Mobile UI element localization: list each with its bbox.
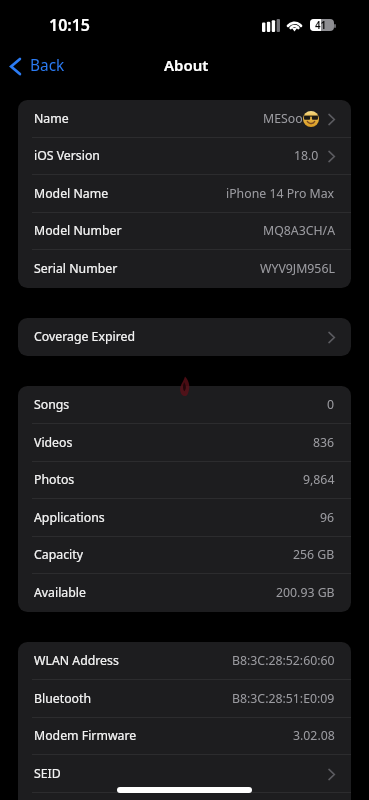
staticText: Serial Number xyxy=(34,260,118,277)
staticText: Modem Firmware xyxy=(34,727,137,744)
button[interactable]: Songs xyxy=(18,386,351,424)
button[interactable]: Model Name xyxy=(18,175,351,213)
button[interactable]: WLAN Address xyxy=(18,642,351,680)
button[interactable]: Name xyxy=(18,100,351,138)
staticText: WLAN Address xyxy=(34,652,119,669)
staticText: Capacity xyxy=(34,546,83,563)
staticText: 0 xyxy=(327,396,335,413)
button[interactable]: Serial Number xyxy=(18,250,351,288)
button[interactable]: Photos xyxy=(18,462,351,499)
button[interactable]: Capacity xyxy=(18,537,351,574)
button[interactable]: Model Number xyxy=(18,213,351,250)
staticText: Coverage Expired xyxy=(34,328,135,345)
button[interactable]: Coverage Expired xyxy=(18,318,351,356)
staticText: Name xyxy=(34,110,69,127)
staticText: Videos xyxy=(34,434,73,451)
button[interactable]: Back xyxy=(0,56,75,77)
button[interactable]: Available xyxy=(18,574,351,612)
staticText: B8:3C:28:52:60:60 xyxy=(232,652,335,669)
staticText: WYV9JM956L xyxy=(260,260,335,277)
staticText: Songs xyxy=(34,396,70,413)
staticText: 836 xyxy=(313,434,335,451)
staticText: 96 xyxy=(320,509,335,526)
button[interactable]: Applications xyxy=(18,499,351,537)
staticText: Available xyxy=(34,584,86,601)
staticText: SEID xyxy=(34,765,61,782)
staticText: 3.02.08 xyxy=(293,727,335,744)
staticText: B8:3C:28:51:E0:09 xyxy=(232,690,335,707)
button[interactable]: Videos xyxy=(18,424,351,462)
staticText: MQ8A3CH/A xyxy=(263,222,335,239)
staticText: 18.0 xyxy=(294,147,319,164)
button[interactable]: SEID xyxy=(18,755,351,793)
staticText: Model Number xyxy=(34,222,122,239)
staticText: 41 xyxy=(315,19,327,32)
staticText: 256 GB xyxy=(293,546,335,563)
staticText: iOS Version xyxy=(34,147,100,164)
staticText: About xyxy=(164,55,209,75)
staticText: Applications xyxy=(34,509,105,526)
button[interactable]: Bluetooth xyxy=(18,680,351,718)
staticText: Photos xyxy=(34,471,75,488)
staticText: MESoo xyxy=(263,110,303,127)
staticText: Model Name xyxy=(34,185,109,202)
staticText: 10:15 xyxy=(49,14,91,36)
staticText: iPhone 14 Pro Max xyxy=(226,185,335,202)
button[interactable]: iOS Version xyxy=(18,138,351,175)
staticText: Back xyxy=(30,55,65,76)
staticText: Bluetooth xyxy=(34,690,92,707)
staticText: 9,864 xyxy=(303,471,335,488)
staticText: 200.93 GB xyxy=(276,584,335,601)
button[interactable]: Modem Firmware xyxy=(18,718,351,755)
